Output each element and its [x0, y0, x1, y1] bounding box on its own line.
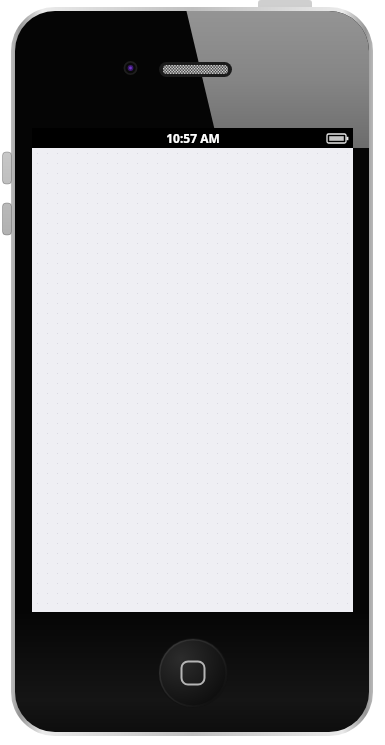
button[interactable]: Home — [159, 639, 227, 707]
staticText: 10:57 AM — [166, 130, 220, 146]
